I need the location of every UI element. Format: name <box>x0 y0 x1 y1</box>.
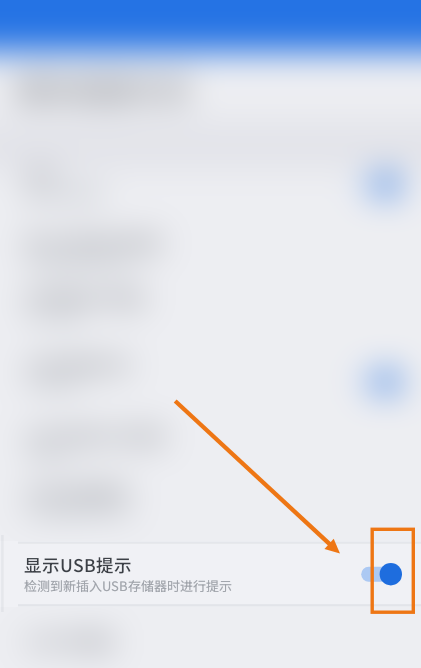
button[interactable]: Show USB prompt setting row <box>0 0 421 668</box>
